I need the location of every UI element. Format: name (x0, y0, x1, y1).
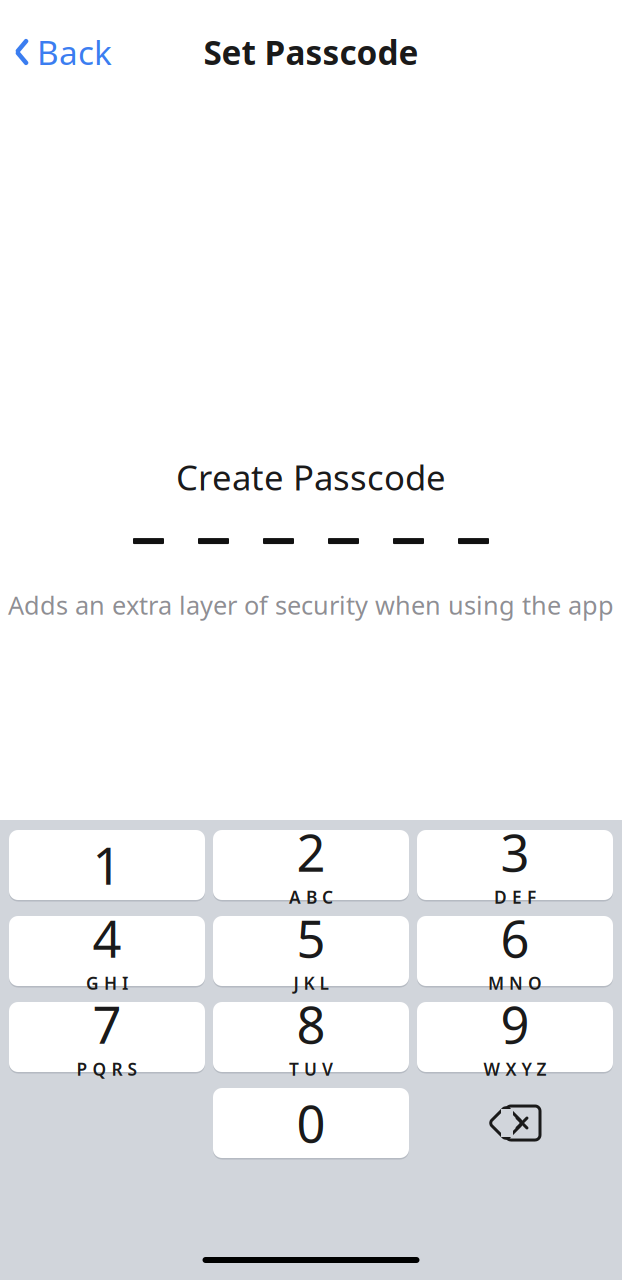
staticText: 2 (296, 818, 325, 886)
staticText: T U V (289, 1058, 333, 1081)
staticText: 5 (296, 904, 325, 972)
button[interactable]: Delete (417, 1088, 613, 1158)
staticText: 1 (92, 831, 121, 899)
staticText: J K L (293, 972, 328, 995)
staticText: A B C (289, 886, 333, 909)
button[interactable]: 2 (213, 830, 409, 900)
button[interactable]: 1 (9, 830, 205, 900)
button[interactable]: Back (0, 20, 126, 84)
staticText: Create Passcode (176, 454, 446, 500)
staticText: 6 (500, 904, 529, 972)
button[interactable]: 4 (9, 916, 205, 986)
staticText: 4 (92, 904, 121, 972)
staticText: Back (37, 30, 112, 74)
staticText: D E F (494, 886, 536, 909)
staticText: 3 (500, 818, 529, 886)
staticText: 8 (296, 990, 325, 1058)
staticText: M N O (488, 972, 542, 995)
staticText: Set Passcode (203, 30, 418, 74)
button[interactable]: 6 (417, 916, 613, 986)
staticText: G H I (86, 972, 128, 995)
staticText: 0 (296, 1089, 325, 1157)
button[interactable]: 0 (213, 1088, 409, 1158)
button[interactable]: 9 (417, 1002, 613, 1072)
button[interactable]: 8 (213, 1002, 409, 1072)
button[interactable]: 7 (9, 1002, 205, 1072)
staticText: P Q R S (76, 1058, 137, 1081)
button[interactable]: 5 (213, 916, 409, 986)
button[interactable]: 3 (417, 830, 613, 900)
staticText: 7 (92, 990, 121, 1058)
staticText: Adds an extra layer of security when usi… (8, 588, 614, 622)
staticText: 9 (500, 990, 529, 1058)
staticText: W X Y Z (483, 1058, 546, 1081)
